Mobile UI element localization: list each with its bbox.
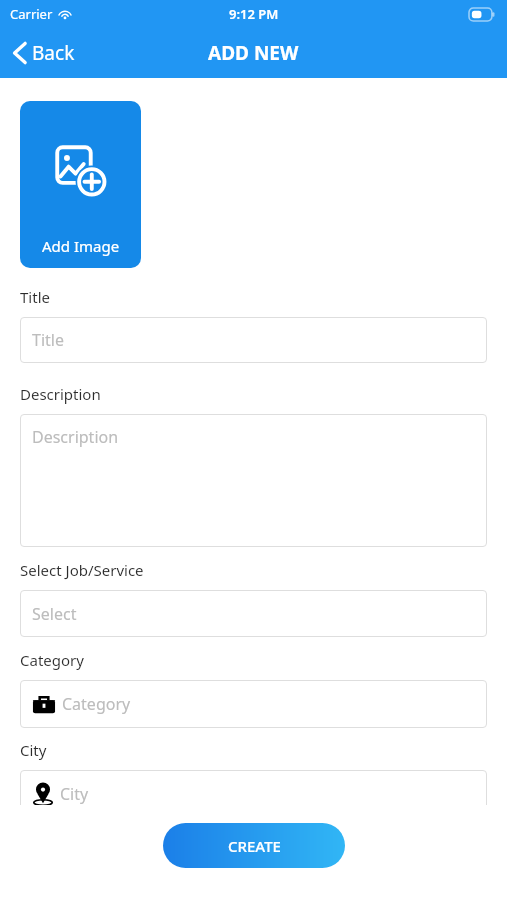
button[interactable]: City: [20, 770, 487, 818]
button[interactable]: Category: [20, 680, 487, 728]
staticText: Description: [20, 384, 101, 404]
staticText: City: [60, 783, 89, 805]
staticText: Description: [32, 426, 119, 448]
staticText: Carrier: [10, 5, 53, 23]
staticText: Title: [20, 287, 50, 307]
staticText: Select Job/Service: [20, 560, 144, 580]
staticText: ADD NEW: [208, 40, 299, 66]
button[interactable]: CREATE: [163, 823, 345, 868]
button[interactable]: Back: [0, 34, 87, 72]
staticText: City: [20, 740, 47, 760]
button[interactable]: Title: [20, 317, 487, 363]
staticText: Add Image: [42, 236, 120, 256]
button[interactable]: Add Image: [20, 101, 141, 268]
button[interactable]: Select: [20, 590, 487, 637]
staticText: Category: [62, 693, 131, 715]
staticText: Back: [32, 40, 75, 66]
staticText: 9:12 PM: [229, 5, 279, 23]
button[interactable]: Description: [20, 414, 487, 547]
staticText: Title: [32, 329, 64, 351]
staticText: CREATE: [228, 836, 281, 856]
staticText: Select: [32, 603, 77, 625]
staticText: Category: [20, 650, 84, 670]
